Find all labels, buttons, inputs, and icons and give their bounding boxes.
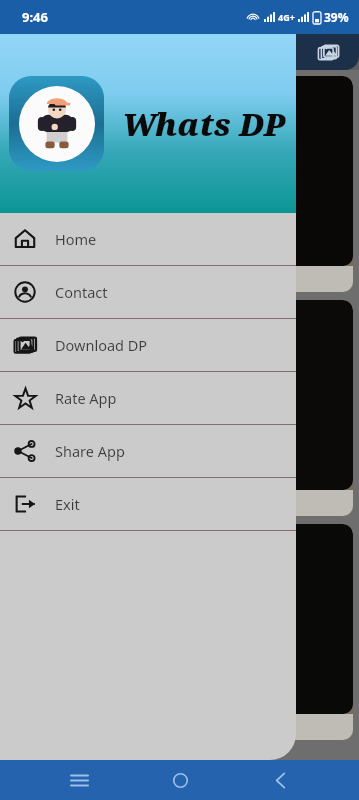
staticText: Download DP xyxy=(55,335,148,355)
button[interactable]: Back xyxy=(258,760,302,800)
button[interactable]: Home xyxy=(158,760,202,800)
button[interactable]: Download DP xyxy=(0,319,296,371)
button[interactable]: Recents xyxy=(57,760,101,800)
button[interactable]: Rate App xyxy=(0,372,296,424)
staticText: 9:46 xyxy=(22,8,48,26)
staticText: Contact xyxy=(55,282,108,302)
staticText: Home xyxy=(55,229,97,249)
staticText: Whats DP xyxy=(122,103,286,145)
button[interactable]: Home xyxy=(0,213,296,265)
staticText: Share App xyxy=(55,441,125,461)
staticText: Exit xyxy=(55,494,80,514)
button[interactable]: App icon xyxy=(9,76,104,171)
button[interactable] xyxy=(6,524,353,740)
button[interactable]: Gallery xyxy=(313,37,343,67)
button[interactable]: Contact xyxy=(0,266,296,318)
button[interactable] xyxy=(6,300,353,516)
button[interactable]: Share App xyxy=(0,425,296,477)
staticText: 4G+ xyxy=(278,11,295,23)
button[interactable]: Exit xyxy=(0,478,296,530)
button[interactable] xyxy=(6,76,353,292)
staticText: 39% xyxy=(324,9,349,25)
staticText: Rate App xyxy=(55,388,117,408)
